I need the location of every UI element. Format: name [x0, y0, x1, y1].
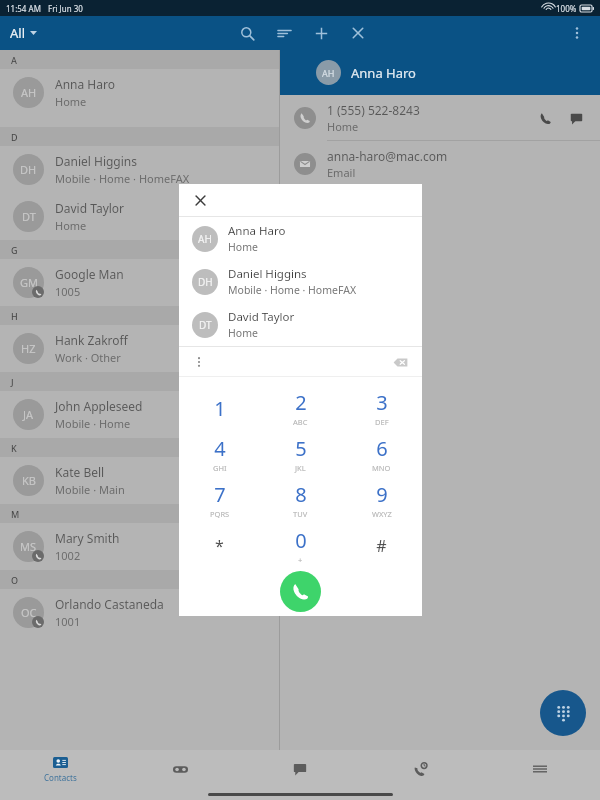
staticText: 0: [295, 527, 307, 554]
staticText: DT: [22, 209, 36, 224]
staticText: *: [215, 535, 224, 557]
staticText: D: [11, 131, 18, 143]
button[interactable]: 8: [260, 477, 341, 523]
staticText: 1 (555) 522-8243: [327, 102, 420, 118]
button[interactable]: Close dialpad: [189, 189, 211, 211]
staticText: anna-haro@mac.com: [327, 148, 448, 164]
button[interactable]: More options: [564, 20, 590, 46]
staticText: 9: [376, 481, 388, 508]
staticText: AH: [21, 85, 37, 100]
staticText: David Taylor: [55, 200, 125, 216]
button[interactable]: *: [179, 523, 260, 569]
button[interactable]: 9: [341, 477, 422, 523]
staticText: Email: [327, 165, 356, 180]
staticText: 1002: [55, 548, 81, 563]
button[interactable]: More options: [189, 352, 209, 372]
staticText: Home: [55, 94, 87, 109]
staticText: 2: [295, 389, 307, 416]
button[interactable]: Search: [234, 20, 260, 46]
button[interactable]: HZ: [0, 325, 279, 372]
button[interactable]: Menu: [480, 750, 600, 788]
staticText: ABC: [293, 417, 308, 427]
button[interactable]: JA: [0, 391, 279, 438]
staticText: David Taylor: [228, 309, 295, 325]
button[interactable]: Contacts: [0, 750, 120, 788]
button[interactable]: DT: [179, 303, 422, 346]
staticText: 5: [295, 435, 307, 462]
button[interactable]: 1: [179, 385, 260, 431]
staticText: Kate Bell: [55, 464, 105, 480]
staticText: Home: [228, 326, 258, 340]
button[interactable]: AH: [179, 217, 422, 260]
staticText: KB: [22, 473, 36, 488]
staticText: Work · Other: [55, 350, 121, 365]
button[interactable]: Voicemail: [120, 750, 240, 788]
button[interactable]: AH: [0, 69, 279, 116]
staticText: O: [11, 574, 19, 586]
button[interactable]: Send message: [564, 106, 588, 130]
button[interactable]: KB: [0, 457, 279, 504]
staticText: 11:54 AM: [6, 3, 41, 14]
staticText: Home: [55, 218, 87, 233]
staticText: 1001: [55, 614, 81, 629]
button[interactable]: 3: [341, 385, 422, 431]
staticText: AH: [322, 67, 335, 79]
staticText: Daniel Higgins: [55, 153, 137, 169]
staticText: Home: [327, 119, 359, 134]
staticText: Daniel Higgins: [228, 266, 307, 282]
staticText: DH: [198, 275, 213, 289]
staticText: 1: [214, 395, 226, 422]
staticText: 4: [214, 435, 226, 462]
staticText: Fri Jun 30: [48, 3, 83, 14]
button[interactable]: 7: [179, 477, 260, 523]
staticText: Mary Smith: [55, 530, 120, 546]
button[interactable]: Backspace: [388, 350, 412, 374]
staticText: A: [11, 54, 17, 66]
button[interactable]: Call: [280, 571, 321, 612]
staticText: HZ: [21, 341, 36, 356]
staticText: JKL: [295, 463, 306, 473]
button[interactable]: Sort: [271, 20, 297, 46]
button[interactable]: 5: [260, 431, 341, 477]
staticText: JA: [23, 407, 34, 422]
button[interactable]: MS: [0, 523, 279, 570]
button[interactable]: #: [341, 523, 422, 569]
button[interactable]: Dialpad: [540, 690, 586, 736]
staticText: 1005: [55, 284, 81, 299]
button[interactable]: OC: [0, 589, 279, 636]
staticText: 8: [295, 481, 307, 508]
staticText: WXYZ: [372, 509, 392, 519]
staticText: #: [376, 535, 387, 557]
staticText: John Appleseed: [55, 398, 143, 414]
staticText: Anna Haro: [351, 64, 416, 82]
button[interactable]: DH: [0, 146, 279, 193]
staticText: GM: [20, 275, 38, 290]
button[interactable]: DT: [0, 193, 279, 240]
staticText: DEF: [375, 417, 389, 427]
button[interactable]: 1 (555) 522-8243: [280, 95, 600, 140]
staticText: G: [11, 244, 18, 256]
button[interactable]: Close: [345, 20, 371, 46]
staticText: MS: [20, 539, 37, 554]
button[interactable]: 0: [260, 523, 341, 569]
staticText: DH: [20, 162, 37, 177]
staticText: J: [11, 376, 14, 388]
button[interactable]: Add contact: [308, 20, 334, 46]
staticText: GHI: [213, 463, 227, 473]
staticText: Contacts: [44, 772, 77, 783]
staticText: Mobile · Home · HomeFAX: [55, 171, 190, 186]
button[interactable]: anna-haro@mac.com: [280, 141, 600, 186]
button[interactable]: All: [10, 24, 41, 42]
button[interactable]: 6: [341, 431, 422, 477]
button[interactable]: 2: [260, 385, 341, 431]
button[interactable]: DH: [179, 260, 422, 303]
staticText: Anna Haro: [228, 223, 286, 239]
button[interactable]: Recents: [360, 750, 480, 788]
staticText: TUV: [293, 509, 308, 519]
button[interactable]: Call: [533, 106, 557, 130]
button[interactable]: 4: [179, 431, 260, 477]
staticText: 100%: [556, 3, 577, 14]
button[interactable]: Messages: [240, 750, 360, 788]
staticText: Mobile · Main: [55, 482, 125, 497]
button[interactable]: GM: [0, 259, 279, 306]
